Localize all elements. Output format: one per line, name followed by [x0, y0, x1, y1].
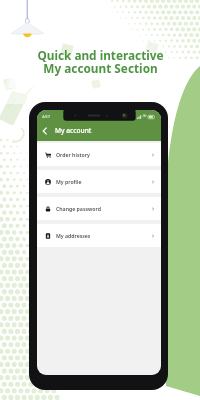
staticText: Quick and interactive	[37, 47, 164, 63]
staticText: Change password	[56, 205, 101, 212]
button[interactable]: Change password	[37, 197, 161, 220]
staticText: My account	[55, 126, 92, 135]
staticText: My account Section	[43, 60, 158, 76]
staticText: My profile	[56, 178, 82, 185]
button[interactable]: Back	[37, 123, 52, 138]
staticText: Order history	[56, 151, 90, 158]
staticText: 4:57	[42, 114, 50, 119]
button[interactable]: Order history	[37, 143, 161, 166]
staticText: My addresses	[56, 232, 91, 239]
button[interactable]: My addresses	[37, 224, 161, 247]
button[interactable]: My profile	[37, 170, 161, 193]
